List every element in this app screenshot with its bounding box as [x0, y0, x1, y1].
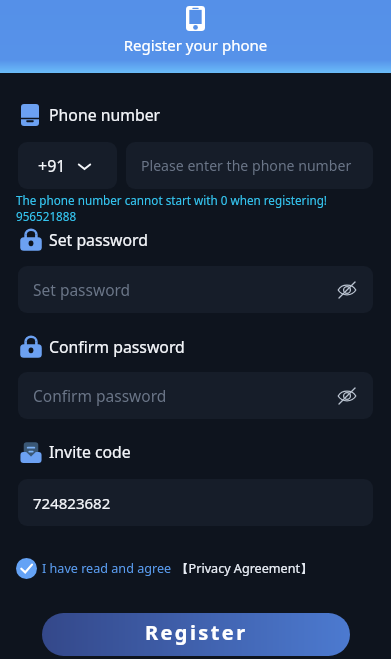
button[interactable]: Show password: [333, 276, 361, 304]
button[interactable]: Set password: [18, 266, 373, 313]
button[interactable]: 724823682: [18, 479, 373, 526]
staticText: 724823682: [33, 493, 111, 513]
staticText: I have read and agree: [42, 560, 172, 577]
staticText: +91: [38, 155, 66, 177]
button[interactable]: I have read and agree: [42, 560, 313, 577]
button[interactable]: Show password: [333, 382, 361, 410]
staticText: The phone number cannot start with 0 whe…: [16, 192, 327, 208]
staticText: Set password: [33, 279, 131, 300]
staticText: 956521888: [16, 208, 77, 224]
button[interactable]: Agree to privacy agreement: [16, 558, 37, 579]
staticText: Invite code: [49, 441, 131, 463]
staticText: Please enter the phone number: [141, 156, 352, 175]
button[interactable]: Confirm password: [18, 372, 373, 419]
staticText: 【Privacy Agreement】: [176, 560, 313, 577]
button[interactable]: Please enter the phone number: [126, 142, 373, 189]
button[interactable]: Register: [42, 613, 350, 656]
button[interactable]: +91: [18, 142, 117, 189]
staticText: Confirm password: [49, 336, 185, 358]
staticText: Set password: [49, 229, 148, 251]
staticText: Register your phone: [0, 35, 391, 55]
staticText: Register: [145, 619, 248, 646]
staticText: Phone number: [49, 104, 161, 126]
staticText: Confirm password: [33, 385, 167, 406]
